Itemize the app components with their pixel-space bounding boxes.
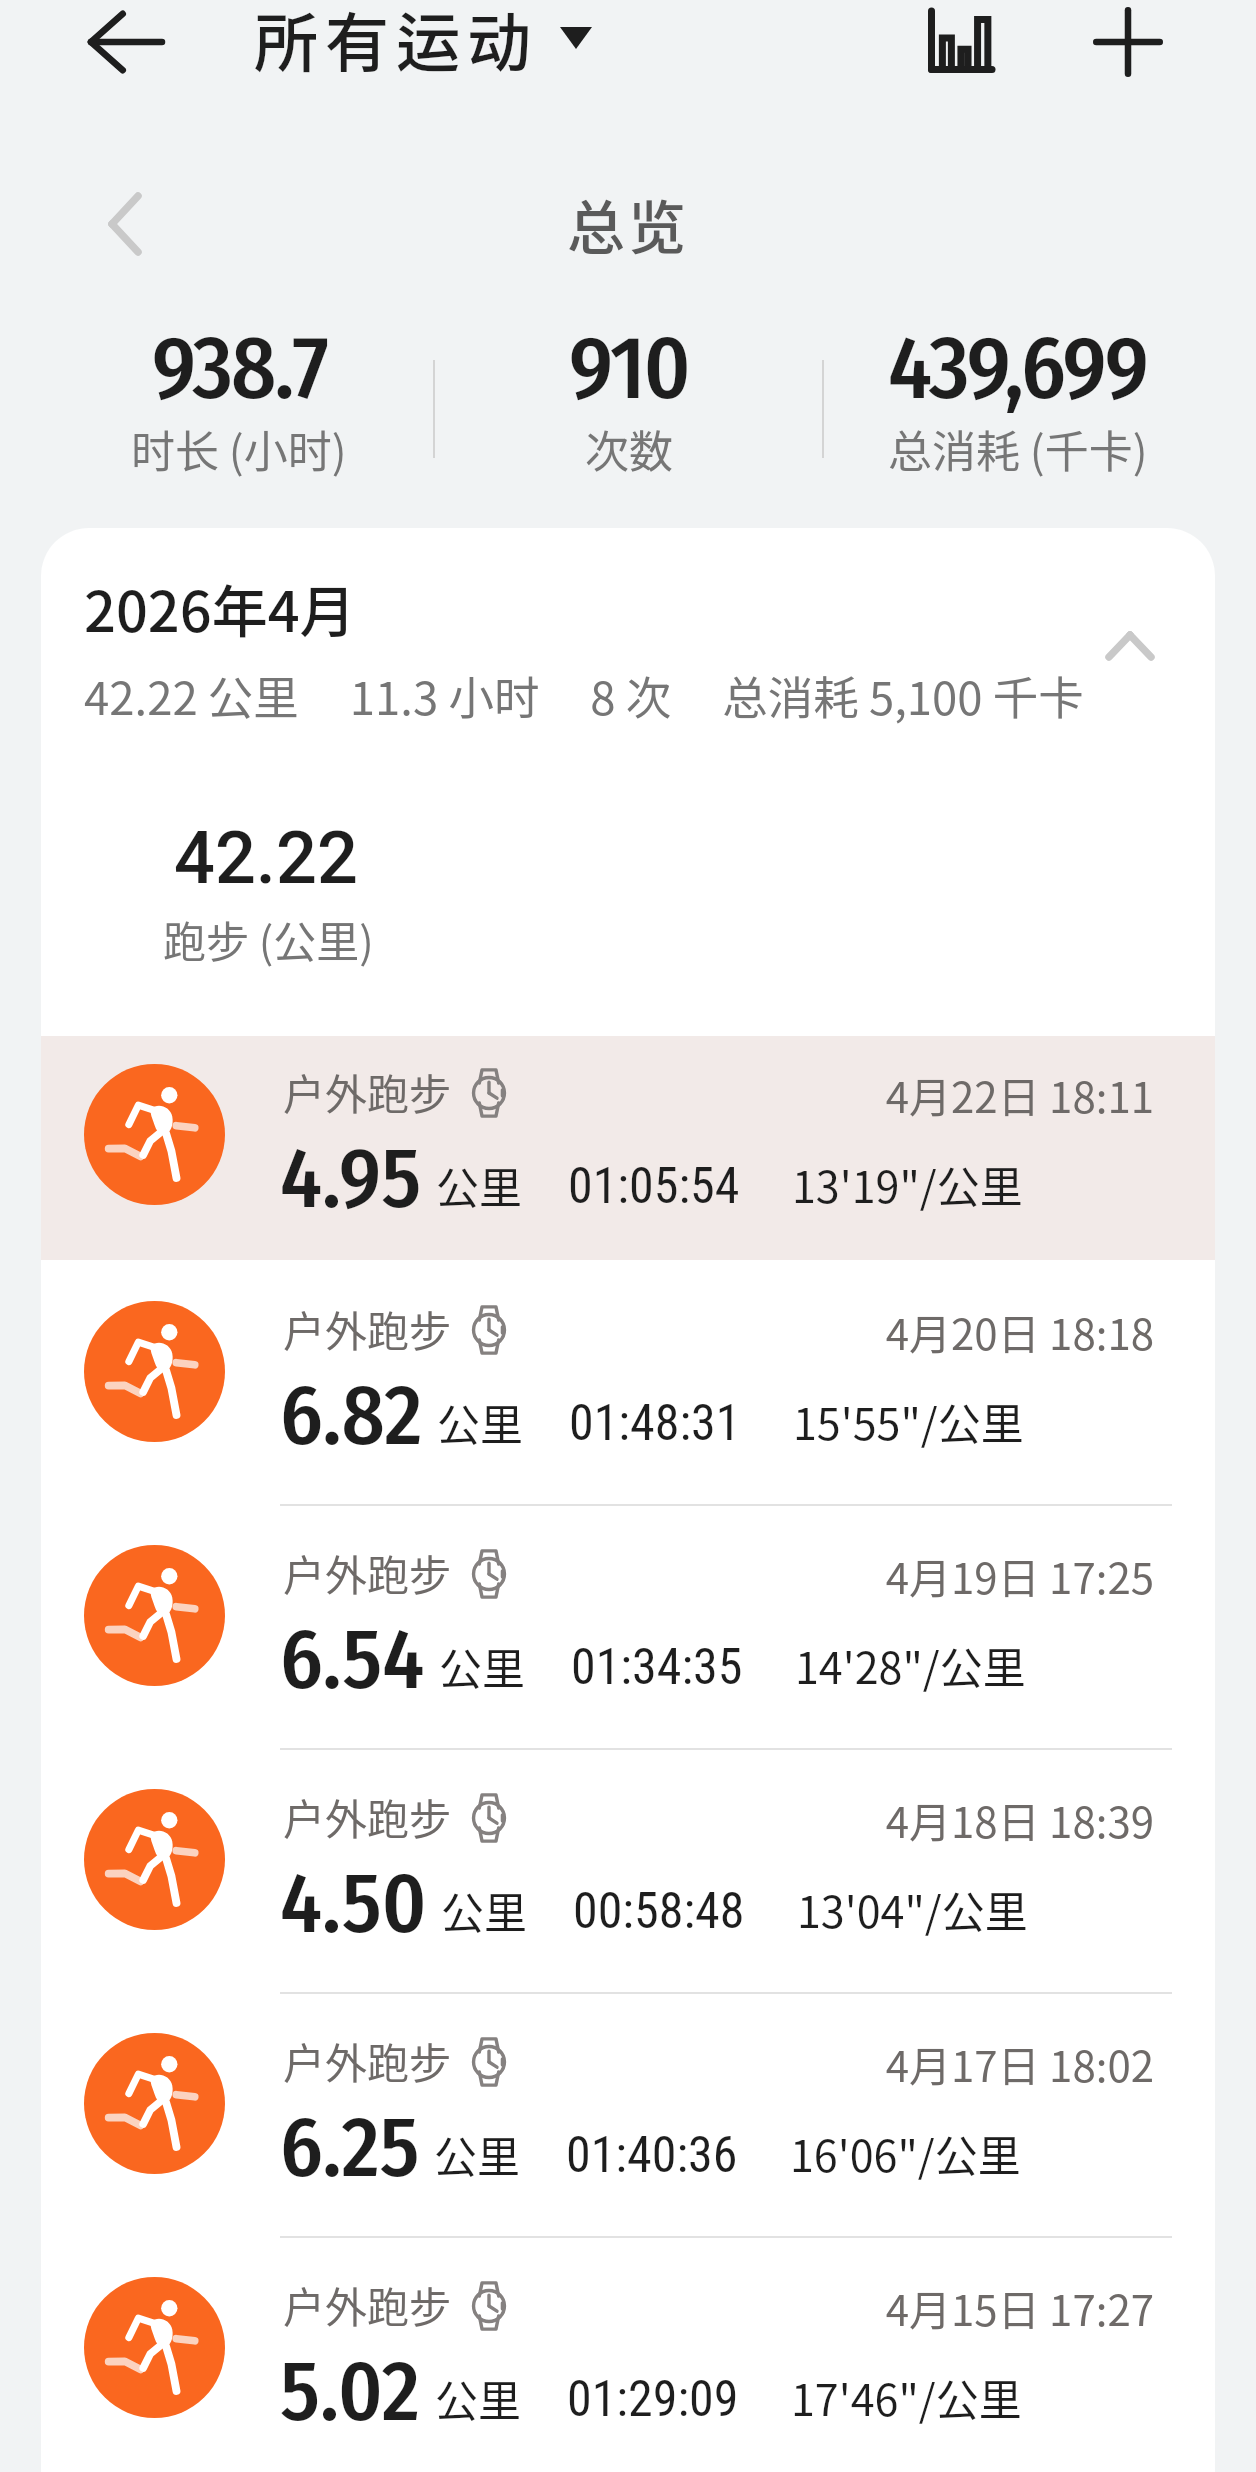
staticText: 户外跑步	[283, 2030, 452, 2091]
staticText: 公里	[441, 1879, 527, 1941]
button[interactable]: 2026年4月	[41, 528, 1215, 1036]
staticText: 16'06"/公里	[790, 2122, 1021, 2184]
staticText: 公里	[436, 1154, 522, 1216]
staticText: 4月22日 18:11	[741, 1064, 1154, 1125]
staticText: 01:05:54	[568, 1157, 740, 1216]
staticText: 总消耗 (千卡)	[888, 417, 1148, 481]
staticText: 01:48:31	[569, 1394, 741, 1453]
staticText: 00:58:48	[573, 1882, 745, 1941]
staticText: 01:29:09	[567, 2370, 739, 2429]
staticText: 公里	[435, 2367, 521, 2429]
staticText: 01:40:36	[566, 2126, 738, 2185]
button[interactable]: 户外跑步	[41, 1504, 1215, 1748]
staticText: 户外跑步	[283, 1542, 452, 1603]
staticText: 2026年4月	[84, 567, 356, 648]
staticText: 5.02	[280, 2341, 421, 2442]
button[interactable]: 户外跑步	[41, 1260, 1215, 1504]
staticText: 6.25	[280, 2097, 420, 2198]
button[interactable]: Statistics	[898, 0, 1022, 84]
staticText: 户外跑步	[283, 1786, 452, 1847]
button[interactable]: Collapse	[1077, 600, 1182, 692]
staticText: 4.95	[280, 1128, 422, 1229]
staticText: 42.22 公里 11.3 小时 8 次 总消耗 5,100 千卡	[84, 662, 1084, 728]
staticText: 4月19日 17:25	[741, 1545, 1154, 1606]
staticText: 4月17日 18:02	[741, 2033, 1154, 2094]
staticText: 跑步 (公里)	[163, 908, 374, 970]
staticText: 17'46"/公里	[791, 2366, 1022, 2428]
staticText: 公里	[437, 1391, 523, 1453]
staticText: 910	[569, 316, 689, 422]
staticText: 时长 (小时)	[131, 417, 347, 481]
button[interactable]: 户外跑步	[41, 1992, 1215, 2236]
button[interactable]: 户外跑步	[41, 1036, 1215, 1260]
button[interactable]: 户外跑步	[41, 2236, 1215, 2472]
staticText: 6.82	[280, 1365, 423, 1466]
staticText: 4.50	[280, 1853, 427, 1954]
button[interactable]: Previous period	[69, 164, 181, 284]
staticText: 公里	[434, 2123, 520, 2185]
staticText: 所有运动	[254, 0, 538, 76]
staticText: 4月20日 18:18	[741, 1301, 1154, 1362]
staticText: 15'55"/公里	[793, 1390, 1024, 1452]
button[interactable]: 户外跑步	[41, 1748, 1215, 1992]
staticText: 13'19"/公里	[792, 1153, 1023, 1215]
button[interactable]: Back	[56, 0, 194, 84]
staticText: 42.22	[174, 816, 358, 900]
staticText: 6.54	[280, 1609, 425, 1710]
staticText: 4月18日 18:39	[741, 1789, 1154, 1850]
button[interactable]: Add	[1068, 0, 1188, 84]
staticText: 01:34:35	[571, 1638, 743, 1697]
staticText: 439,699	[888, 316, 1147, 422]
staticText: 13'04"/公里	[797, 1878, 1028, 1940]
staticText: 次数	[585, 417, 673, 481]
staticText: 总览	[567, 182, 690, 266]
staticText: 14'28"/公里	[795, 1634, 1026, 1696]
staticText: 户外跑步	[283, 1061, 452, 1122]
staticText: 公里	[439, 1635, 525, 1697]
button[interactable]: 所有运动	[254, 0, 592, 76]
staticText: 户外跑步	[283, 2274, 452, 2335]
staticText: 户外跑步	[283, 1298, 452, 1359]
staticText: 4月15日 17:27	[741, 2277, 1154, 2338]
staticText: 938.7	[152, 316, 327, 422]
